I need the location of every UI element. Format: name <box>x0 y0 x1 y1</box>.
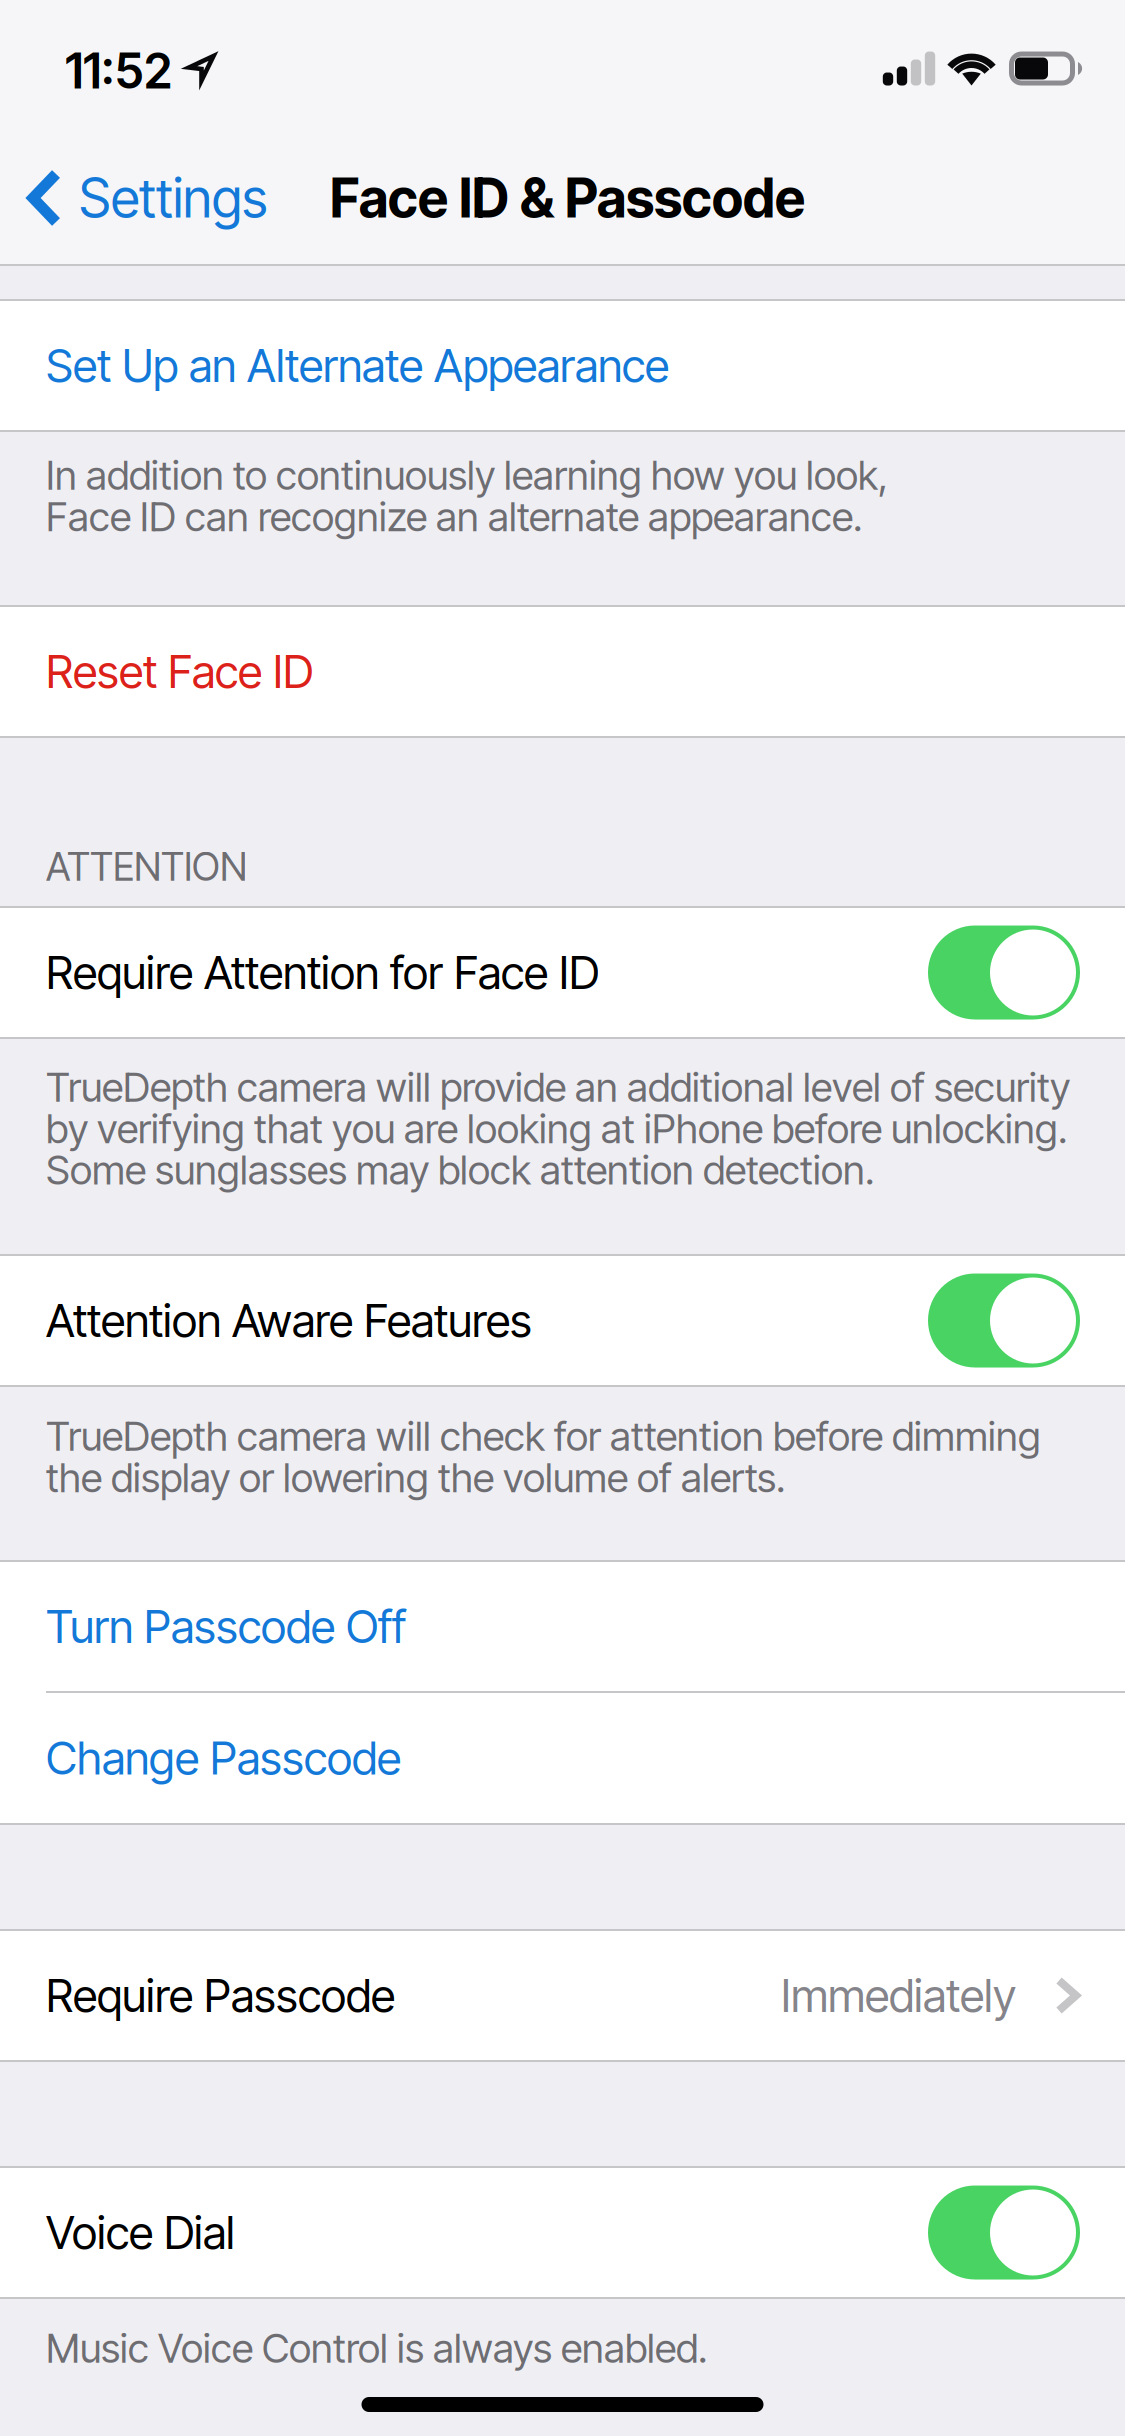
staticText: Set Up an Alternate Appearance <box>46 338 669 393</box>
staticText: Turn Passcode Off <box>46 1599 406 1654</box>
button[interactable]: Require Passcode <box>0 1931 1125 2060</box>
staticText: ATTENTION <box>46 843 247 890</box>
button[interactable]: Voice Dial <box>0 2168 1125 2297</box>
staticText: Immediately <box>781 1968 1016 2023</box>
button[interactable]: Attention Aware Features <box>0 1256 1125 1385</box>
button[interactable]: Change Passcode <box>0 1693 1125 1823</box>
staticText: In addition to continuously learning how… <box>46 451 888 541</box>
button[interactable]: Require Attention for Face ID <box>0 908 1125 1037</box>
button[interactable]: Settings <box>0 132 289 264</box>
staticText: Reset Face ID <box>46 644 313 699</box>
button[interactable]: Turn Passcode Off <box>0 1562 1125 1691</box>
staticText: Require Attention for Face ID <box>46 945 599 1000</box>
button[interactable]: Set Up an Alternate Appearance <box>0 301 1125 430</box>
staticText: Music Voice Control is always enabled. <box>46 2324 707 2372</box>
staticText: 11:52 <box>65 42 172 100</box>
staticText: TrueDepth camera will provide an additio… <box>46 1063 1070 1194</box>
staticText: TrueDepth camera will check for attentio… <box>46 1412 1041 1502</box>
staticText: Voice Dial <box>46 2205 235 2260</box>
button[interactable]: Reset Face ID <box>0 607 1125 736</box>
staticText: Require Passcode <box>46 1968 395 2023</box>
staticText: Face ID & Passcode <box>330 166 805 230</box>
staticText: Attention Aware Features <box>46 1293 532 1348</box>
staticText: Settings <box>79 166 267 230</box>
staticText: Change Passcode <box>46 1731 401 1785</box>
